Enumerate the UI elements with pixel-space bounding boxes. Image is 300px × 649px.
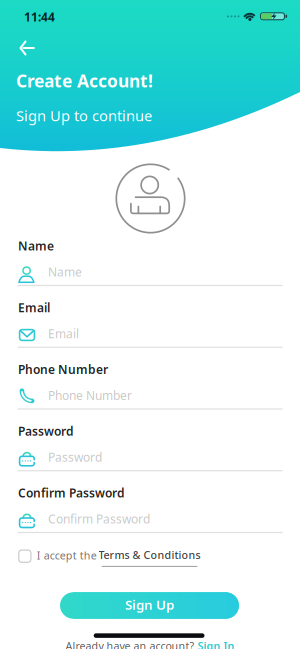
button[interactable]: Terms & Conditions (99, 548, 201, 562)
staticText: Name (18, 238, 54, 254)
button[interactable]: I accept the Terms & Conditions (18, 549, 31, 563)
staticText: Password (18, 423, 74, 439)
staticText: Name (48, 264, 82, 280)
staticText: Phone Number (48, 387, 132, 403)
textField[interactable]: Email (0, 0, 265, 28)
staticText: Confirm Password (18, 485, 125, 501)
button[interactable]: Sign Up (60, 592, 239, 619)
staticText: Confirm Password (48, 511, 150, 527)
staticText: Email (18, 300, 50, 316)
staticText: Create Account! (16, 69, 153, 92)
staticText: Sign In (197, 639, 234, 649)
staticText: 11:44 (24, 9, 55, 25)
button[interactable]: Sign In (197, 639, 234, 649)
textField[interactable]: Phone Number (0, 0, 265, 28)
staticText: Sign Up (125, 596, 174, 613)
staticText: Already have an account? (65, 639, 194, 649)
staticText: Terms & Conditions (99, 548, 201, 562)
textField[interactable]: Confirm Password (0, 0, 265, 28)
staticText: I accept the (37, 548, 97, 562)
textField[interactable]: Password (0, 0, 265, 28)
staticText: Phone Number (18, 361, 108, 377)
staticText: Sign Up to continue (16, 106, 152, 125)
button[interactable]: Back (8, 33, 44, 63)
staticText: Password (48, 449, 102, 465)
staticText: Email (48, 326, 79, 341)
textField[interactable]: Name (0, 0, 265, 28)
